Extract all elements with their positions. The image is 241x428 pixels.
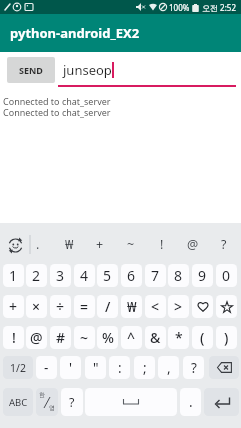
button[interactable]: 한 (36, 388, 58, 416)
staticText: 100% (169, 2, 190, 13)
staticText: ? (221, 236, 227, 253)
button[interactable] (192, 295, 213, 318)
button[interactable]: ^ (121, 326, 142, 349)
button[interactable]: + (90, 235, 110, 253)
button[interactable]: 7 (145, 264, 166, 287)
button[interactable]: ; (134, 356, 155, 379)
button[interactable] (216, 295, 237, 318)
button[interactable]: ! (152, 235, 172, 253)
staticText: ? (191, 359, 197, 377)
staticText: & (150, 328, 161, 347)
staticText: - (44, 359, 49, 377)
button[interactable]: > (168, 295, 189, 318)
button[interactable]: 9 (192, 264, 213, 287)
staticText: ÷ (56, 297, 65, 316)
button[interactable]: ? (61, 388, 83, 416)
staticText: 1 (9, 266, 18, 285)
staticText: 오전 2:52 (202, 2, 236, 13)
button[interactable]: ₩ (121, 295, 142, 318)
button[interactable]: × (26, 295, 47, 318)
staticText: @ (30, 328, 43, 347)
staticText: ) (224, 328, 229, 347)
button[interactable] (85, 388, 177, 416)
button[interactable]: ! (3, 326, 24, 349)
staticText: 9 (198, 266, 207, 285)
button[interactable]: # (50, 326, 71, 349)
staticText: ₩ (65, 236, 74, 253)
button[interactable] (204, 388, 239, 416)
staticText: 한 (39, 391, 45, 399)
button[interactable]: 2 (26, 264, 47, 287)
staticText: . (189, 393, 193, 411)
staticText: : (118, 359, 122, 377)
staticText: 3 (56, 266, 65, 285)
staticText: Connected to chat_server Connected to ch… (3, 95, 111, 118)
button[interactable]: ? (183, 356, 204, 379)
staticText: ABC (9, 396, 28, 409)
staticText: 5 (103, 266, 112, 285)
button[interactable]: 4 (74, 264, 95, 287)
button[interactable]: " (85, 356, 106, 379)
button[interactable]: ( (192, 326, 213, 349)
button[interactable]: 5 (97, 264, 118, 287)
staticText: . (36, 236, 40, 253)
button[interactable]: ) (216, 326, 237, 349)
button[interactable]: % (97, 326, 118, 349)
button[interactable]: < (145, 295, 166, 318)
staticText: ( (200, 328, 205, 347)
button[interactable]: . (180, 388, 201, 416)
staticText: ! (12, 328, 16, 347)
staticText: junseop (63, 61, 112, 79)
staticText: ~ (80, 328, 89, 347)
staticText: + (9, 297, 18, 316)
button[interactable]: 1 (3, 264, 24, 287)
staticText: python-android_EX2 (10, 24, 140, 42)
button[interactable]: - (36, 356, 57, 379)
staticText: ~ (127, 236, 135, 253)
button[interactable]: / (97, 295, 118, 318)
button[interactable]: 0 (216, 264, 237, 287)
staticText: ; (143, 359, 147, 377)
button[interactable]: , (158, 356, 179, 379)
button[interactable]: ? (214, 235, 234, 253)
button[interactable]: ÷ (50, 295, 71, 318)
button[interactable]: junseop (58, 52, 236, 87)
staticText: / (105, 297, 111, 316)
staticText: % (102, 328, 114, 347)
button[interactable]: ₩ (59, 235, 79, 253)
staticText: 4 (80, 266, 89, 285)
button[interactable]: : (109, 356, 130, 379)
staticText: 2 (32, 266, 41, 285)
staticText: ? (69, 394, 75, 411)
button[interactable] (209, 356, 239, 379)
staticText: 영 (49, 404, 55, 412)
button[interactable]: = (74, 295, 95, 318)
staticText: SEND (19, 64, 43, 76)
staticText: " (93, 359, 99, 377)
staticText: 8 (174, 266, 183, 285)
button[interactable]: & (145, 326, 166, 349)
button[interactable]: ' (60, 356, 81, 379)
button[interactable]: + (3, 295, 24, 318)
staticText: 6 (127, 266, 136, 285)
button[interactable]: ABC (3, 388, 33, 416)
staticText: × (32, 297, 41, 316)
button[interactable]: 6 (121, 264, 142, 287)
staticText: < (151, 297, 160, 316)
button[interactable]: * (168, 326, 189, 349)
button[interactable]: ~ (121, 235, 141, 253)
staticText: + (96, 236, 104, 253)
staticText: ! (160, 236, 164, 253)
button[interactable]: 1/2 (3, 356, 33, 379)
button[interactable]: @ (183, 235, 203, 253)
staticText: @ (187, 236, 199, 253)
button[interactable] (7, 237, 24, 254)
staticText: = (80, 297, 89, 316)
staticText: ₩ (127, 297, 137, 316)
button[interactable]: 3 (50, 264, 71, 287)
button[interactable]: 8 (168, 264, 189, 287)
button[interactable]: . (28, 235, 48, 253)
button[interactable]: SEND (7, 57, 55, 83)
button[interactable]: ~ (74, 326, 95, 349)
button[interactable]: @ (26, 326, 47, 349)
